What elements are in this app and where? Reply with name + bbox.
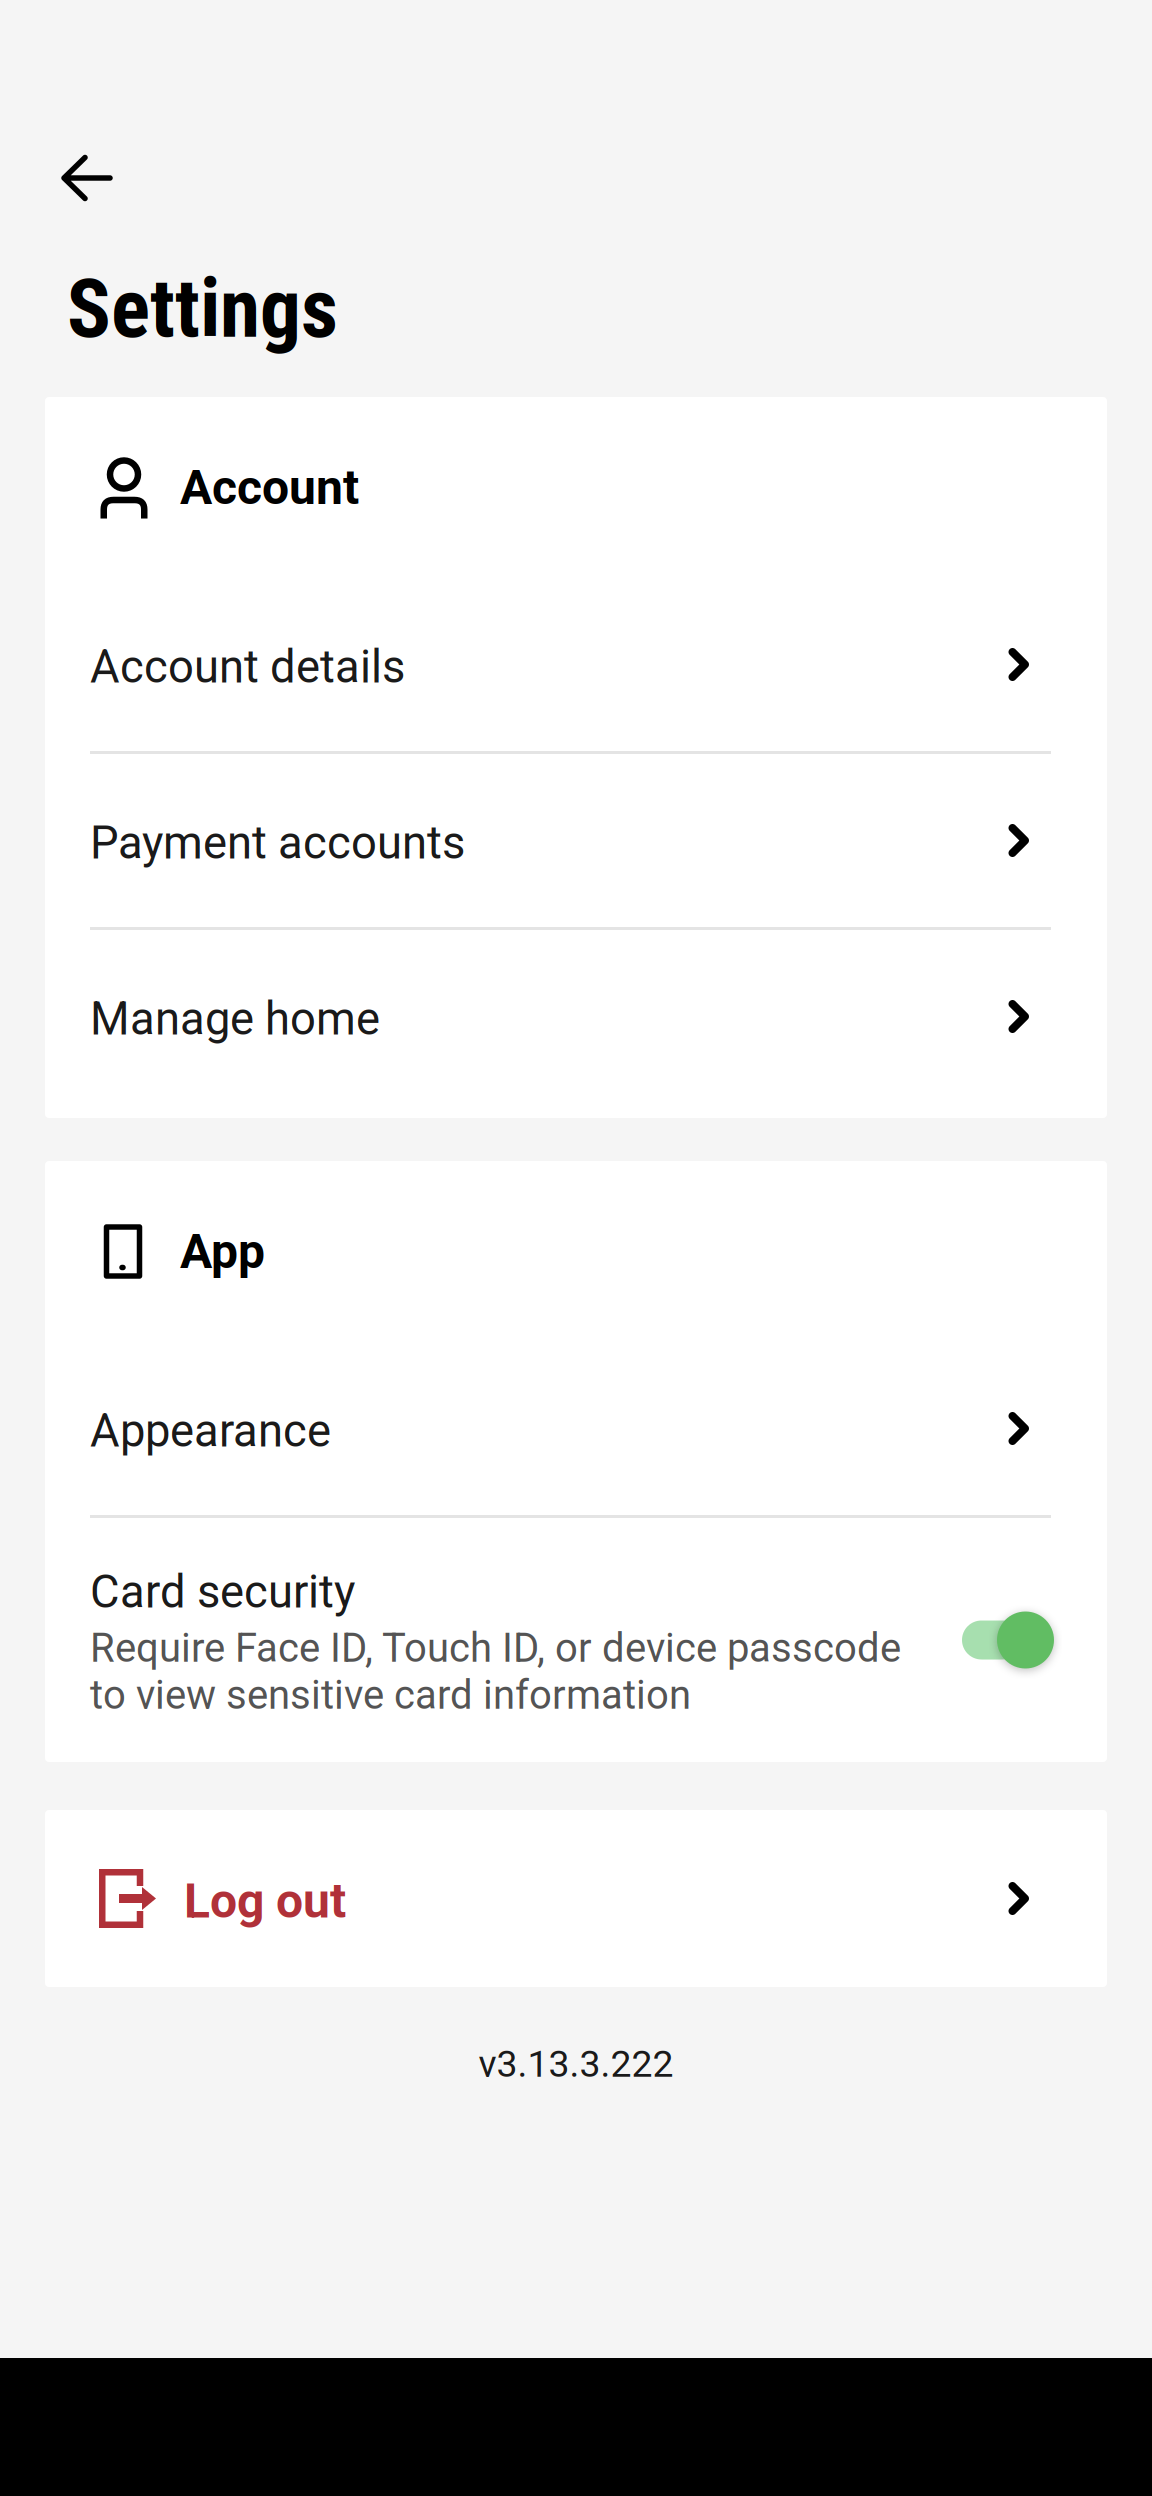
button[interactable]: Log out xyxy=(45,1810,1107,1987)
staticText: Account details xyxy=(90,640,405,693)
staticText: Appearance xyxy=(90,1404,331,1457)
button[interactable]: Manage home xyxy=(45,930,1107,1103)
button[interactable]: Account details xyxy=(45,578,1107,751)
staticText: Account xyxy=(180,459,359,516)
staticText: v3.13.3.222 xyxy=(478,2042,673,2086)
button[interactable]: Payment accounts xyxy=(45,754,1107,927)
button[interactable]: Appearance xyxy=(45,1342,1107,1515)
staticText: Card security xyxy=(90,1566,355,1619)
staticText: Payment accounts xyxy=(90,816,465,869)
staticText: Require Face ID, Touch ID, or device pas… xyxy=(90,1625,901,1718)
staticText: Manage home xyxy=(90,992,380,1045)
staticText: Log out xyxy=(184,1873,346,1929)
button[interactable]: Back xyxy=(37,138,137,218)
button[interactable]: Card security xyxy=(45,1518,1107,1762)
staticText: App xyxy=(180,1223,265,1280)
staticText: Settings xyxy=(67,261,338,357)
